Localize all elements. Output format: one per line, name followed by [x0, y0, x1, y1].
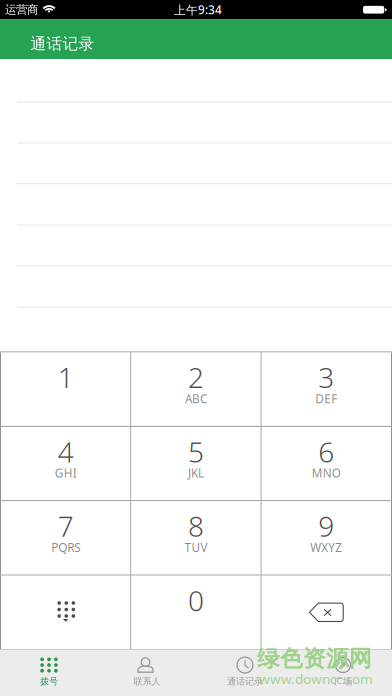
staticText: 拨号: [40, 676, 58, 687]
button[interactable]: 3: [262, 352, 391, 426]
button[interactable]: 联系人: [98, 650, 196, 696]
staticText: 上午9:34: [174, 2, 222, 18]
button[interactable]: 2: [131, 352, 261, 426]
staticText: GHI: [55, 465, 77, 481]
button[interactable]: 0: [131, 576, 261, 649]
staticText: WXYZ: [310, 539, 342, 555]
button[interactable]: Delete: [262, 576, 391, 649]
button[interactable]: Hide keypad: [1, 576, 130, 649]
staticText: TUV: [184, 539, 207, 555]
staticText: 3: [318, 358, 334, 396]
staticText: 4: [58, 432, 74, 471]
staticText: DEF: [315, 391, 337, 407]
staticText: 通话记录: [30, 34, 94, 54]
staticText: 绿色资源网: [257, 644, 372, 673]
button[interactable]: 8: [131, 501, 261, 575]
staticText: 广场: [334, 676, 352, 687]
staticText: MNO: [312, 465, 341, 481]
staticText: ABC: [185, 391, 207, 407]
button[interactable]: 拨号: [0, 650, 98, 696]
staticText: 联系人: [133, 676, 160, 687]
staticText: www.downcc.com: [259, 669, 373, 688]
staticText: 5: [188, 432, 204, 471]
staticText: 0: [188, 581, 204, 619]
staticText: JKL: [188, 465, 204, 481]
button[interactable]: 广场: [294, 650, 392, 696]
staticText: 8: [188, 507, 204, 545]
staticText: 2: [188, 358, 204, 396]
button[interactable]: 4: [1, 427, 130, 500]
button[interactable]: 1: [1, 352, 130, 426]
button[interactable]: 5: [131, 427, 261, 500]
staticText: 运营商: [5, 2, 38, 17]
staticText: 9: [318, 507, 334, 545]
button[interactable]: 通话记录: [196, 650, 294, 696]
button[interactable]: 9: [262, 501, 391, 575]
staticText: 通话记录: [227, 676, 263, 687]
staticText: PQRS: [51, 539, 80, 555]
button[interactable]: 6: [262, 427, 391, 500]
staticText: 6: [318, 432, 334, 471]
button[interactable]: 7: [1, 501, 130, 575]
staticText: 7: [58, 507, 74, 545]
staticText: 1: [58, 358, 74, 396]
